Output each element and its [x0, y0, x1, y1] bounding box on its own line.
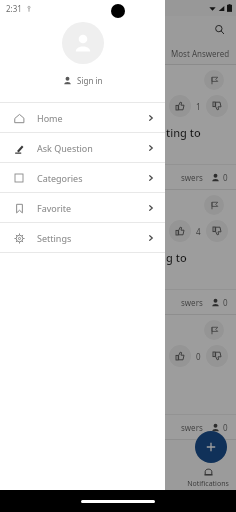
button[interactable]: Ask Question: [0, 133, 165, 162]
staticText: swers: [181, 422, 203, 433]
staticText: 0: [223, 422, 228, 433]
staticText: 0: [196, 351, 201, 362]
staticText: 0: [223, 172, 228, 183]
staticText: Sign in: [77, 75, 103, 86]
button[interactable]: Downvote: [206, 220, 228, 242]
button[interactable]: Profile picture: [62, 22, 104, 64]
button[interactable]: Upvote: [169, 345, 191, 367]
staticText: Home: [37, 112, 63, 124]
button[interactable]: Favorite: [0, 193, 165, 222]
staticText: swers: [181, 172, 203, 183]
staticText: 1: [196, 101, 201, 112]
button[interactable]: Search: [210, 20, 228, 38]
staticText: Notifications: [187, 479, 229, 489]
staticText: g to: [166, 250, 187, 265]
staticText: swers: [181, 297, 203, 308]
button[interactable]: Settings: [0, 223, 165, 252]
button[interactable]: Notifications: [180, 465, 236, 489]
staticText: Favorite: [37, 202, 72, 214]
button[interactable]: Report: [0, 190, 236, 315]
staticText: Most Answered: [171, 48, 230, 59]
button[interactable]: Downvote: [206, 95, 228, 117]
button[interactable]: Sign in: [57, 72, 109, 89]
button[interactable]: Report: [204, 320, 224, 340]
staticText: 0: [223, 297, 228, 308]
button[interactable]: Report: [0, 65, 236, 190]
button[interactable]: Report: [204, 70, 224, 90]
button[interactable]: Downvote: [206, 345, 228, 367]
button[interactable]: Upvote: [169, 95, 191, 117]
button[interactable]: Most Answered: [165, 44, 236, 63]
staticText: Settings: [37, 232, 72, 244]
staticText: Categories: [37, 172, 83, 184]
button[interactable]: Upvote: [169, 220, 191, 242]
button[interactable]: Categories: [0, 163, 165, 192]
button[interactable]: Report: [0, 315, 236, 440]
button[interactable]: Home: [0, 103, 165, 132]
staticText: ting to: [166, 125, 201, 140]
staticText: 2:31: [6, 3, 22, 14]
staticText: 4: [196, 226, 201, 237]
staticText: Ask Question: [37, 142, 93, 154]
button[interactable]: Add question: [195, 431, 227, 463]
button[interactable]: Report: [204, 195, 224, 215]
